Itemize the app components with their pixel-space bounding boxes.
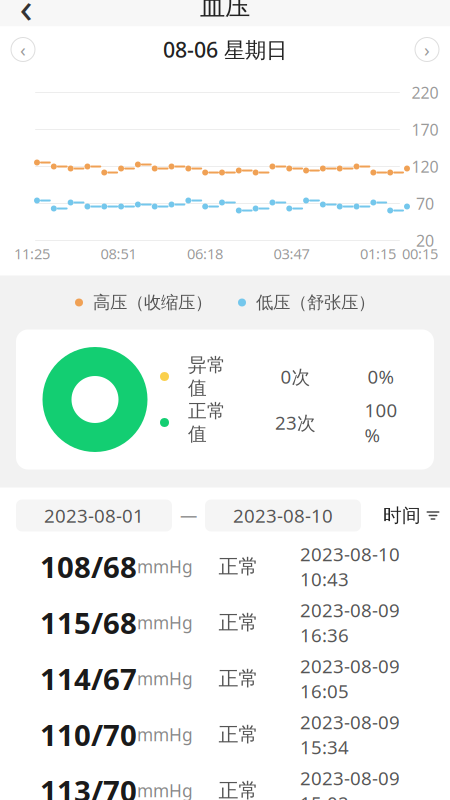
staticText: 23次 [275,410,316,435]
staticText: 2023-08-09 16:36 [300,598,400,647]
staticText: 100% [364,398,397,447]
staticText: 110/70 [40,715,137,754]
staticText: 00:15 [402,244,438,263]
staticText: mmHg [137,723,193,746]
staticText: mmHg [137,611,193,634]
staticText: mmHg [137,779,193,800]
staticText: 11:25 [14,244,50,263]
button[interactable]: Next day [404,26,450,72]
staticText: ‹ [19,0,32,35]
button[interactable]: 113/70 [16,767,434,800]
staticText: 2023-08-01 [44,503,144,528]
staticText: 2023-08-10 [233,503,333,528]
staticText: 01:15 [360,244,396,263]
staticText: 06:18 [187,244,223,263]
staticText: 正常 [218,722,258,747]
staticText: 正常 [218,778,258,800]
staticText: 120 [411,156,438,177]
staticText: › [424,37,430,62]
staticText: 2023-08-10 10:43 [300,542,400,591]
button[interactable]: 115/68 [16,599,434,645]
staticText: 正常 [218,610,258,635]
staticText: 108/68 [40,547,137,586]
button[interactable]: Previous day [0,26,46,72]
staticText: 低压（舒张压） [256,292,375,313]
staticText: 0% [367,364,394,389]
staticText: — [180,504,197,527]
staticText: 115/68 [40,603,137,642]
staticText: 高压（收缩压） [93,292,212,313]
staticText: 正常 [218,554,258,579]
button[interactable]: 2023-08-10 [205,499,361,531]
staticText: 114/67 [40,659,137,698]
staticText: mmHg [137,667,193,690]
staticText: 170 [411,119,438,140]
staticText: 0次 [280,364,310,389]
staticText: 异常值 [188,354,226,399]
staticText: 时间 [383,504,421,527]
staticText: 220 [411,82,438,103]
staticText: 2023-08-09 16:05 [300,654,400,703]
staticText: 113/70 [40,771,137,800]
button[interactable]: 108/68 [16,543,434,589]
button[interactable]: 110/70 [16,711,434,757]
staticText: 正常 [218,666,258,691]
staticText: 血压 [200,0,250,22]
staticText: 08-06 星期日 [163,35,287,64]
button[interactable]: Back [0,0,52,26]
staticText: 03:47 [273,244,309,263]
staticText: mmHg [137,555,193,578]
staticText: 2023-08-09 15:34 [300,710,400,759]
staticText: ‹ [20,37,26,62]
staticText: 70 [416,193,434,214]
staticText: 20 [416,230,434,251]
button[interactable]: 114/67 [16,655,434,701]
staticText: 2023-08-09 15:02 [300,766,400,800]
button[interactable]: 2023-08-01 [16,499,172,531]
button[interactable]: 时间 [383,499,440,531]
staticText: 08:51 [100,244,136,263]
staticText: 正常值 [188,400,226,445]
